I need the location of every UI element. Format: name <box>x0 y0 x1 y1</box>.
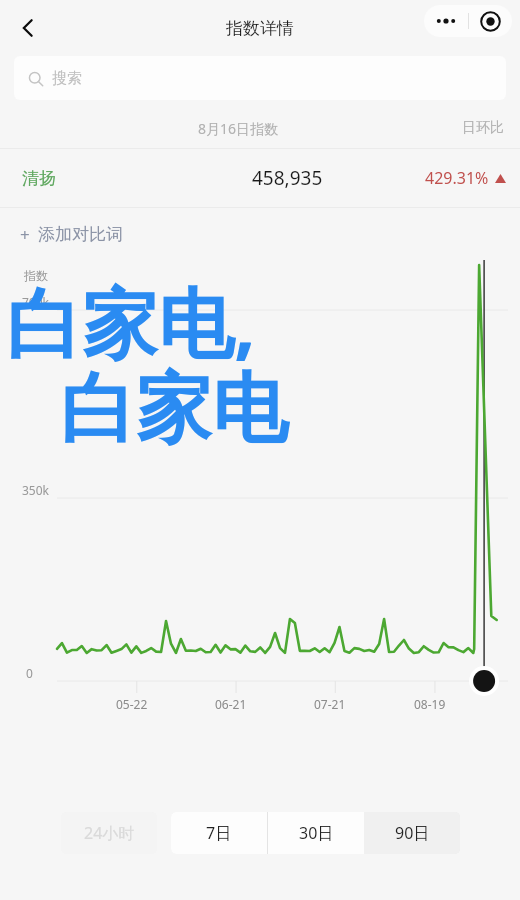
staticText: 清扬 <box>22 168 56 189</box>
staticText: 指数 <box>24 268 48 283</box>
button[interactable]: More <box>424 5 468 37</box>
staticText: 458,935 <box>252 165 323 191</box>
button[interactable]: Back <box>6 6 50 50</box>
button[interactable]: 搜索 <box>14 56 506 100</box>
button[interactable]: 7日 <box>171 812 267 854</box>
button[interactable]: 90日 <box>364 812 460 854</box>
staticText: 指数详情 <box>226 18 294 39</box>
button[interactable]: 24小时 <box>61 812 157 854</box>
button[interactable]: 清扬 <box>0 149 520 207</box>
staticText: 添加对比词 <box>38 224 123 245</box>
staticText: 05-22 <box>116 696 148 712</box>
button[interactable]: Close <box>469 5 512 37</box>
staticText: 429.31% <box>425 167 489 189</box>
staticText: 8月16日指数 <box>198 119 279 138</box>
staticText: 06-21 <box>215 696 247 712</box>
staticText: 700k <box>22 294 50 310</box>
staticText: 7日 <box>206 822 232 844</box>
staticText: 搜索 <box>52 69 82 88</box>
staticText: 白家电 <box>60 362 288 458</box>
staticText: + <box>20 223 30 246</box>
staticText: 24小时 <box>84 822 135 844</box>
staticText: 08-19 <box>414 696 446 712</box>
staticText: 白家电, <box>6 270 256 374</box>
staticText: 日环比 <box>462 119 504 137</box>
staticText: 350k <box>22 482 50 498</box>
staticText: 30日 <box>299 822 334 844</box>
staticText: 07-21 <box>314 696 346 712</box>
button[interactable]: 30日 <box>268 812 364 854</box>
button[interactable]: + <box>0 208 520 260</box>
staticText: 90日 <box>395 822 430 844</box>
staticText: 0 <box>26 665 33 681</box>
